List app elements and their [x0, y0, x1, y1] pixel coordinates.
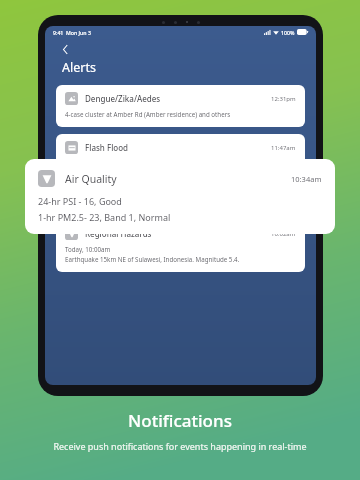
staticText: 9:41 Mon Jun 3	[53, 29, 91, 36]
button[interactable]: Dengue/Zika/Aedes	[56, 85, 305, 127]
staticText: 12:31pm	[271, 95, 296, 103]
button[interactable]: Flash Flood	[56, 134, 305, 176]
staticText: Dengue/Zika/Aedes	[85, 93, 161, 104]
staticText: 1-hr PM2.5- 23, Band 1, Normal	[38, 211, 171, 223]
staticText: Receive push notifications for events ha…	[53, 440, 307, 452]
staticText: 11:47am	[271, 144, 296, 152]
staticText: Regional Hazards	[85, 228, 152, 239]
staticText: 10:34am	[291, 174, 322, 184]
staticText: Air Quality	[65, 172, 117, 186]
staticText: Notifications	[128, 409, 232, 432]
staticText: Alerts	[62, 59, 96, 76]
staticText: 10:02am	[271, 230, 296, 238]
staticText: Today, 10:00am	[65, 245, 111, 253]
staticText: 4-case cluster at Amber Rd (Amber reside…	[65, 110, 231, 118]
button[interactable]: Back	[57, 41, 73, 57]
staticText: 24-hr PSI - 16, Good	[38, 195, 122, 207]
staticText: Earthquake 15km NE of Sulawesi, Indonesi…	[65, 255, 240, 263]
button[interactable]: Air Quality	[25, 159, 335, 234]
staticText: Flash Flood	[85, 142, 129, 153]
button[interactable]: Regional Hazards	[56, 220, 305, 272]
staticText: 100%	[281, 29, 295, 36]
